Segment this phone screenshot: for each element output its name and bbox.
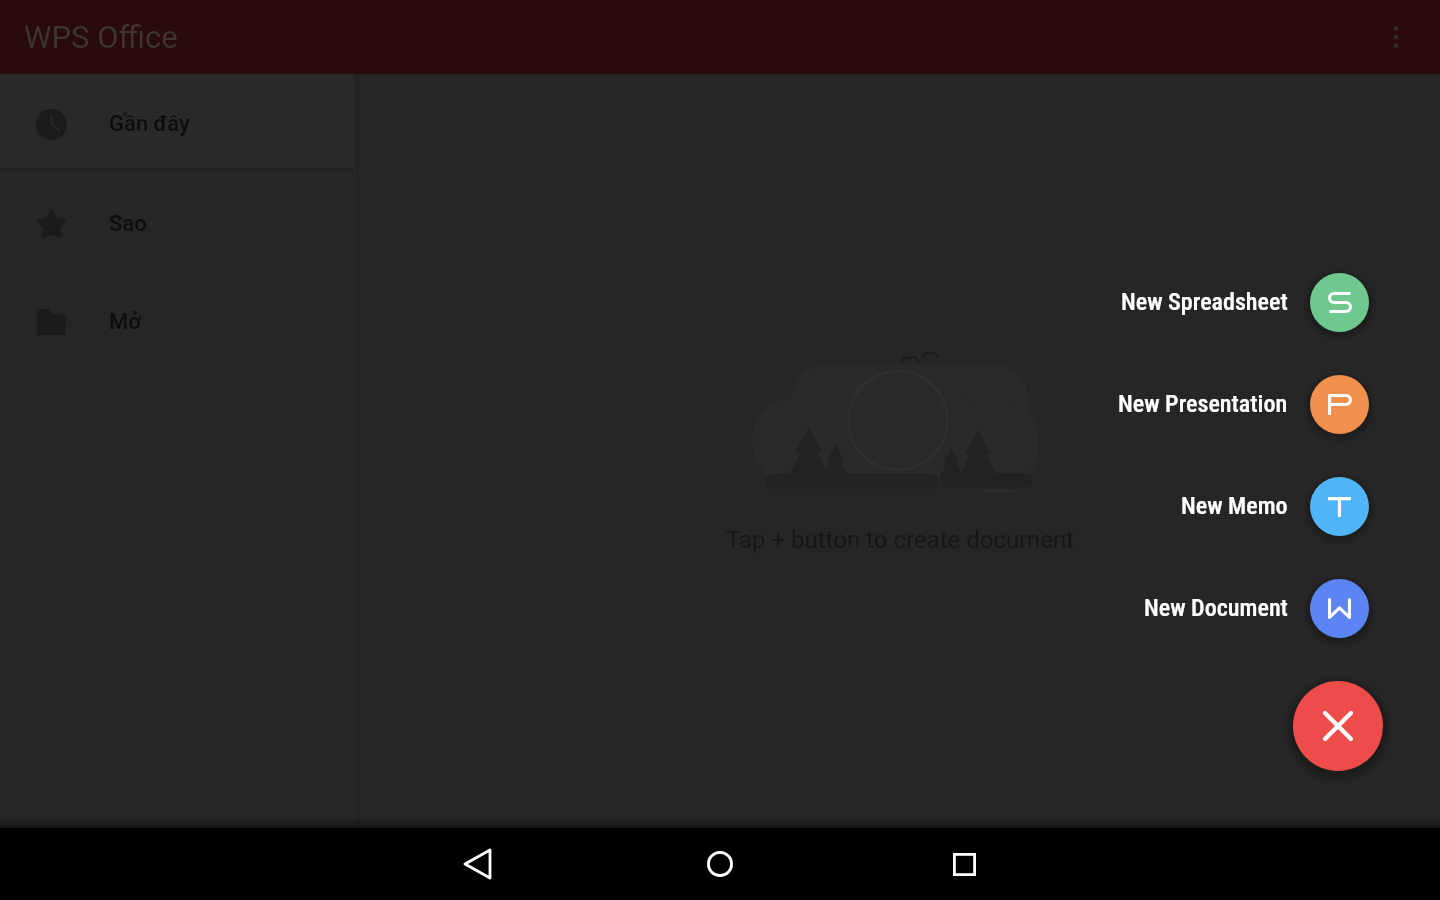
button[interactable]: New Presentation [984,374,1369,434]
staticText: Mở [109,309,141,335]
staticText: New Memo [1181,492,1288,520]
button[interactable]: New Document [984,578,1369,638]
staticText: Gần đây [109,111,190,137]
button[interactable]: Recent apps [916,828,1012,900]
button[interactable]: New Memo [984,476,1369,536]
button[interactable]: Gần đây [0,84,359,164]
button[interactable]: Back [429,828,525,900]
staticText: New Presentation [1118,390,1288,418]
button[interactable]: New Spreadsheet [984,272,1369,332]
button[interactable]: More options [1372,0,1420,74]
staticText: New Spreadsheet [1121,288,1288,316]
staticText: Tap + button to create document [726,526,1075,554]
button[interactable]: Close create menu [1293,681,1383,771]
staticText: Sao [109,211,147,237]
staticText: New Document [1144,594,1288,622]
button[interactable]: Home [672,828,768,900]
staticText: WPS Office [24,19,178,55]
